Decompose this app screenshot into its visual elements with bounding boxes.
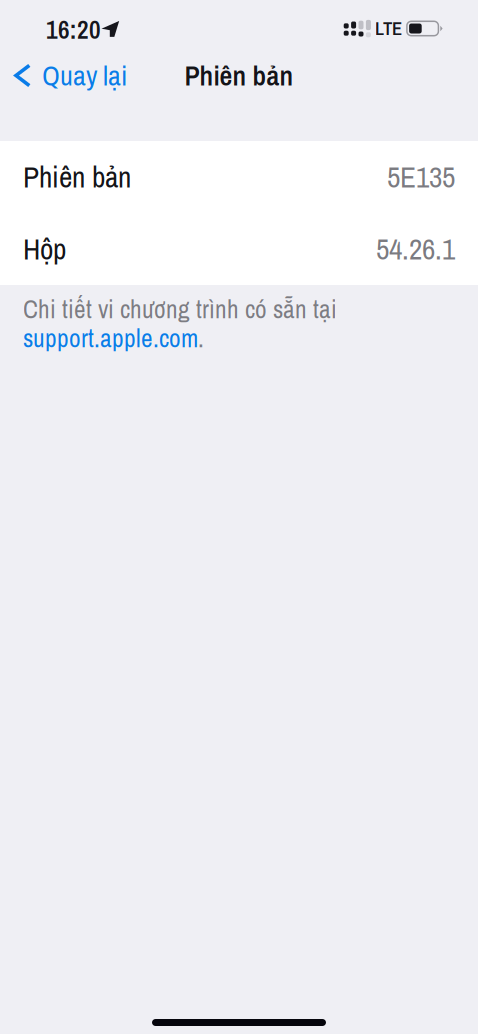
button[interactable]: Quay lại xyxy=(0,47,139,104)
staticText: support.apple.com xyxy=(23,321,198,355)
staticText: 54.26.1 xyxy=(376,229,455,269)
staticText: 16:20 xyxy=(46,12,101,46)
staticText: Quay lại xyxy=(42,57,127,94)
staticText: Phiên bản xyxy=(184,57,293,94)
staticText: Hộp xyxy=(23,229,66,269)
button[interactable]: support.apple.com xyxy=(23,321,198,355)
staticText: LTE xyxy=(375,16,402,41)
staticText: Phiên bản xyxy=(23,157,131,197)
staticText: . xyxy=(198,321,204,355)
staticText: Chi tiết vi chương trình có sẵn tại xyxy=(23,292,337,326)
staticText: 5E135 xyxy=(387,157,455,197)
